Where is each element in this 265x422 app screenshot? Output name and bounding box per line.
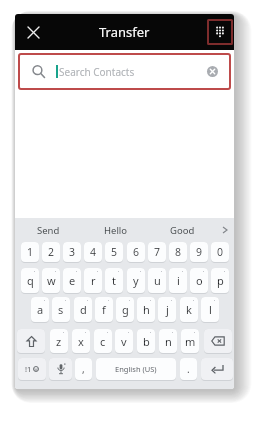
staticText: 7 [154, 245, 161, 259]
button[interactable]: q [21, 268, 39, 294]
staticText: x [78, 334, 84, 349]
staticText: Hello [104, 224, 128, 237]
staticText: t [112, 273, 116, 288]
button[interactable]: 0 [211, 242, 229, 263]
button[interactable]: k [180, 297, 198, 323]
staticText: Send [37, 224, 60, 237]
button[interactable]: f [95, 297, 113, 323]
button[interactable]: Hello [82, 218, 149, 242]
staticText: i [177, 273, 180, 288]
button[interactable]: z [50, 329, 68, 354]
button[interactable]: l [201, 297, 219, 323]
button[interactable]: . [180, 358, 197, 381]
button[interactable]: Send [15, 218, 82, 242]
button[interactable]: u [148, 268, 166, 294]
button[interactable]: 9 [190, 242, 208, 263]
button[interactable]: n [159, 329, 177, 354]
staticText: c [100, 334, 106, 349]
staticText: 4 [90, 245, 97, 259]
staticText: l [209, 302, 212, 317]
button[interactable]: p [211, 268, 229, 294]
staticText: a [37, 302, 44, 317]
staticText: 2 [48, 245, 55, 259]
button[interactable]: v [115, 329, 133, 354]
staticText: k [186, 302, 192, 317]
staticText: b [143, 334, 150, 349]
button[interactable]: x [72, 329, 90, 354]
staticText: y [133, 273, 139, 288]
staticText: d [80, 302, 87, 317]
button[interactable] [17, 329, 45, 354]
staticText: s [58, 302, 64, 317]
staticText: 5 [111, 245, 118, 259]
button[interactable]: 8 [169, 242, 187, 263]
staticText: , [82, 362, 85, 376]
staticText: e [69, 273, 76, 288]
button[interactable]: r [84, 268, 102, 294]
staticText: n [165, 334, 172, 349]
button[interactable]: h [137, 297, 155, 323]
button[interactable]: 3 [63, 242, 81, 263]
button[interactable] [216, 218, 234, 242]
button[interactable]: t [105, 268, 123, 294]
staticText: . [187, 362, 190, 376]
staticText: g [122, 302, 129, 317]
button[interactable]: c [94, 329, 112, 354]
button[interactable]: o [190, 268, 208, 294]
staticText: 1 [27, 245, 34, 259]
staticText: 9 [196, 245, 203, 259]
button[interactable]: Good [149, 218, 216, 242]
staticText: Search Contacts [59, 65, 135, 79]
staticText: 0 [217, 245, 224, 259]
staticText: v [121, 334, 127, 349]
staticText: f [102, 302, 106, 317]
button[interactable]: b [137, 329, 155, 354]
button[interactable] [201, 358, 233, 381]
staticText: z [56, 334, 62, 349]
staticText: o [196, 273, 203, 288]
staticText: r [91, 273, 96, 288]
button[interactable]: , [75, 358, 92, 381]
staticText: English (US) [115, 364, 157, 374]
button[interactable]: i [169, 268, 187, 294]
button[interactable]: d [74, 297, 92, 323]
button[interactable]: m [181, 329, 199, 354]
button[interactable]: 6 [127, 242, 145, 263]
staticText: j [166, 302, 169, 317]
button[interactable]: 4 [84, 242, 102, 263]
button[interactable]: 5 [105, 242, 123, 263]
staticText: w [47, 273, 56, 288]
button[interactable] [23, 22, 44, 43]
staticText: 8 [175, 245, 182, 259]
staticText: m [185, 334, 196, 349]
button[interactable]: g [116, 297, 134, 323]
button[interactable] [204, 329, 232, 354]
button[interactable]: 1 [21, 242, 39, 263]
staticText: 3 [69, 245, 76, 259]
staticText: u [154, 273, 161, 288]
staticText: 6 [133, 245, 140, 259]
staticText: Good [170, 224, 195, 237]
button[interactable]: 2 [42, 242, 60, 263]
button[interactable]: j [158, 297, 176, 323]
button[interactable] [49, 358, 72, 381]
button[interactable]: !1 [18, 358, 46, 381]
staticText: Transfer [99, 23, 150, 41]
staticText: q [27, 273, 34, 288]
button[interactable]: e [63, 268, 81, 294]
button[interactable]: y [127, 268, 145, 294]
button[interactable]: English (US) [96, 358, 176, 381]
button[interactable]: a [31, 297, 49, 323]
button[interactable]: w [42, 268, 60, 294]
button[interactable]: 7 [148, 242, 166, 263]
staticText: p [217, 273, 224, 288]
staticText: h [143, 302, 150, 317]
button[interactable] [207, 19, 233, 45]
staticText: !1 [25, 364, 32, 374]
button[interactable]: s [52, 297, 70, 323]
button[interactable]: Search Contacts [18, 53, 231, 90]
